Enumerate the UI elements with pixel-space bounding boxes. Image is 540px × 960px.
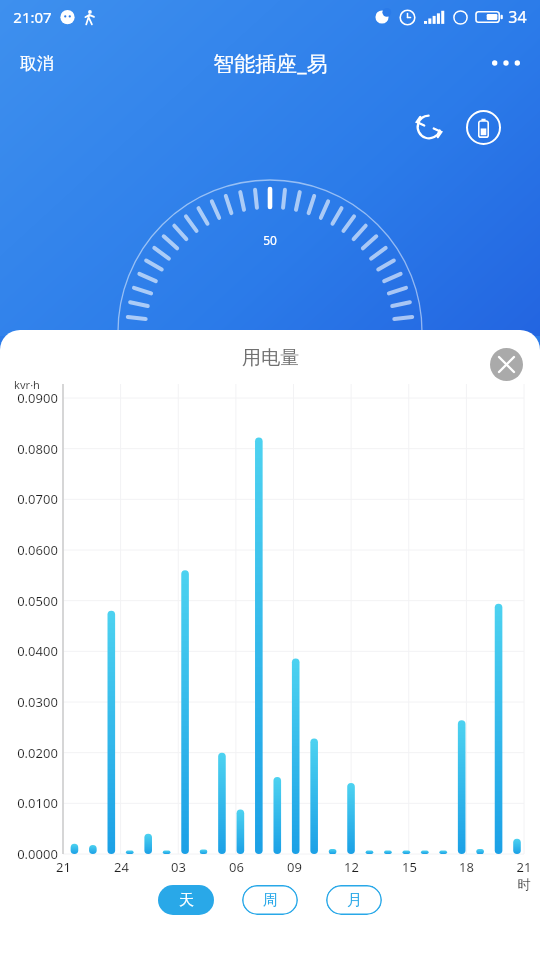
staticText: 0.0100 <box>17 794 58 812</box>
button[interactable]: Power statistics <box>460 104 506 150</box>
staticText: 0.0900 <box>17 389 58 407</box>
staticText: 03 <box>171 858 186 876</box>
staticText: 0.0700 <box>17 490 58 508</box>
staticText: 0.0300 <box>17 693 58 711</box>
staticText: 15 <box>402 858 417 876</box>
staticText: 21时 <box>511 858 537 893</box>
staticText: 0.0400 <box>17 642 58 660</box>
staticText: 0.0500 <box>17 592 58 610</box>
staticText: 34 <box>508 6 527 28</box>
button[interactable]: More options <box>480 46 532 80</box>
staticText: 0.0000 <box>17 845 58 863</box>
staticText: 用电量 <box>242 346 299 370</box>
staticText: 智能插座_易 <box>213 49 328 78</box>
button[interactable]: 月 <box>326 885 382 915</box>
button[interactable]: Close <box>490 348 523 381</box>
staticText: 取消 <box>20 53 54 74</box>
staticText: 0.0200 <box>17 744 58 762</box>
staticText: 09 <box>287 858 302 876</box>
staticText: 06 <box>229 858 244 876</box>
staticText: 21:07 <box>13 7 52 27</box>
button[interactable]: Refresh <box>406 104 452 150</box>
staticText: 0.0800 <box>17 440 58 458</box>
staticText: 月 <box>347 891 362 910</box>
staticText: 0.0600 <box>17 541 58 559</box>
button[interactable]: 取消 <box>6 44 68 83</box>
button[interactable]: 周 <box>242 885 298 915</box>
staticText: 24 <box>114 858 129 876</box>
staticText: 50 <box>263 232 277 248</box>
button[interactable]: 天 <box>158 885 214 915</box>
staticText: 12 <box>344 858 359 876</box>
staticText: 21 <box>56 858 71 876</box>
staticText: 天 <box>179 891 194 910</box>
staticText: kvr·h <box>14 377 40 392</box>
staticText: 周 <box>263 891 278 910</box>
staticText: 18 <box>459 858 474 876</box>
